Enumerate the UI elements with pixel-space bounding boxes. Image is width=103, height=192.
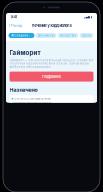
staticText: Назад [11, 23, 22, 28]
staticText: ▂▄▆ [84, 16, 90, 18]
button[interactable]: Подробнее [9, 72, 93, 82]
button[interactable]: Документы [35, 33, 56, 38]
button[interactable]: Врачи [79, 33, 93, 38]
staticText: 9:41 [10, 15, 17, 19]
button[interactable]: Лекарства [57, 33, 78, 38]
staticText: ▮ [90, 15, 92, 19]
staticText: Лечение у кардиолога [31, 23, 71, 28]
staticText: Назначено [9, 87, 37, 93]
staticText: Врачи [81, 34, 91, 37]
staticText: Лекарства [59, 34, 76, 37]
staticText: Гайморит — это воспалительный процесс сл… [9, 58, 93, 69]
staticText: Подробнее [42, 74, 61, 79]
staticText: Исследование ЭхоКГ [12, 101, 51, 106]
staticText: Гайморит [9, 49, 40, 56]
staticText: ‹ [8, 22, 10, 28]
button[interactable]: Обследование [8, 33, 34, 38]
staticText: Обследование [10, 34, 32, 37]
staticText: требуется согласование времени [14, 97, 50, 100]
button[interactable]: ‹ [8, 22, 22, 28]
staticText: Документы [37, 34, 54, 37]
